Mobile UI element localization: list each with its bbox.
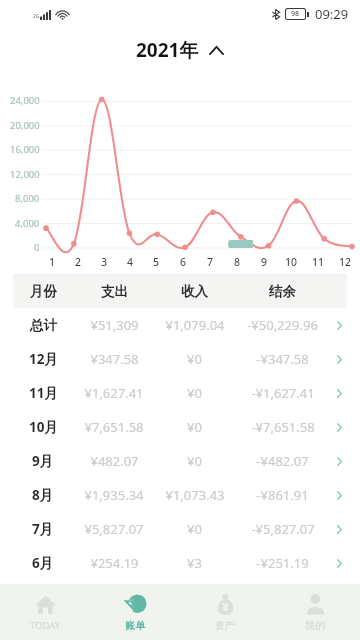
staticText: 8,000	[15, 192, 40, 205]
staticText: 20,000	[10, 119, 40, 132]
button[interactable]: TODAY	[0, 584, 90, 640]
staticText: ¥0	[187, 384, 202, 402]
staticText: 1	[49, 255, 56, 269]
staticText: ¥3	[187, 554, 202, 572]
button[interactable]: 7月	[0, 512, 360, 546]
staticText: 4,000	[15, 217, 40, 230]
staticText: 0	[34, 241, 40, 254]
staticText: -¥861.91	[256, 486, 309, 504]
staticText: 24,000	[10, 94, 40, 107]
staticText: TODAY	[30, 619, 61, 632]
staticText: ¥0	[187, 418, 202, 436]
staticText: 结余	[269, 283, 296, 300]
staticText: 8月	[32, 486, 54, 504]
staticText: ¥0	[187, 520, 202, 538]
button[interactable]: 总计	[0, 308, 360, 342]
staticText: 6月	[32, 554, 54, 572]
button[interactable]: 10月	[0, 410, 360, 444]
staticText: 98	[291, 9, 300, 19]
staticText: 账单	[125, 619, 145, 632]
staticText: ¥0	[187, 350, 202, 368]
staticText: 12,000	[10, 168, 40, 181]
other: Collapse year picker	[209, 46, 224, 55]
staticText: ¥482.07	[90, 452, 139, 470]
staticText: ¥0	[187, 452, 202, 470]
staticText: ¥1,935.34	[84, 486, 144, 504]
staticText: 8	[234, 255, 241, 269]
staticText: ¥1,079.04	[165, 316, 225, 334]
staticText: 我的	[305, 619, 325, 632]
button[interactable]: 6月	[0, 546, 360, 580]
staticText: 4	[127, 255, 134, 269]
staticText: 2	[75, 255, 82, 269]
staticText: 7	[207, 255, 214, 269]
staticText: 12	[339, 255, 352, 269]
staticText: 收入	[181, 283, 208, 300]
staticText: 9	[261, 255, 268, 269]
staticText: 3	[101, 255, 108, 269]
staticText: 2G	[33, 13, 40, 20]
button[interactable]: 账单	[90, 584, 180, 640]
staticText: 支出	[101, 283, 128, 300]
staticText: 月份	[30, 283, 57, 300]
staticText: -¥482.07	[256, 452, 309, 470]
button[interactable]: 8月	[0, 478, 360, 512]
staticText: -¥5,827.07	[251, 520, 315, 538]
staticText: ¥7,651.58	[84, 418, 144, 436]
button[interactable]: 12月	[0, 342, 360, 376]
staticText: 16,000	[10, 143, 40, 156]
staticText: 6	[180, 255, 187, 269]
staticText: -¥347.58	[256, 350, 309, 368]
staticText: 12月	[29, 350, 58, 368]
staticText: 9月	[32, 452, 54, 470]
staticText: -¥251.19	[256, 554, 309, 572]
staticText: 11月	[29, 384, 58, 402]
staticText: 总计	[30, 317, 57, 334]
staticText: ¥51,309	[90, 316, 139, 334]
staticText: ¥347.58	[90, 350, 139, 368]
staticText: 10	[285, 255, 298, 269]
staticText: 5	[153, 255, 160, 269]
staticText: 资产	[215, 619, 235, 632]
staticText: -¥50,229.96	[247, 316, 318, 334]
staticText: 2021年	[136, 37, 199, 63]
button[interactable]: 2021年	[126, 33, 234, 67]
staticText: -¥1,627.41	[251, 384, 315, 402]
staticText: 09:29	[315, 5, 349, 23]
staticText: 7月	[32, 520, 54, 538]
staticText: ¥1,073.43	[165, 486, 225, 504]
button[interactable]: 9月	[0, 444, 360, 478]
staticText: ¥1,627.41	[84, 384, 144, 402]
button[interactable]: 11月	[0, 376, 360, 410]
button[interactable]: 资产	[180, 584, 270, 640]
staticText: -¥7,651.58	[251, 418, 315, 436]
staticText: 11	[312, 255, 325, 269]
staticText: ¥5,827.07	[84, 520, 144, 538]
staticText: 10月	[29, 418, 58, 436]
staticText: ¥254.19	[90, 554, 139, 572]
button[interactable]: 我的	[270, 584, 360, 640]
